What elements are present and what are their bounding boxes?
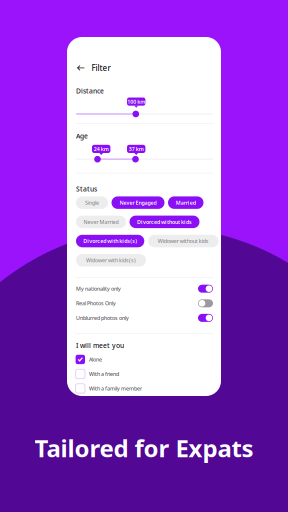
staticText: With a friend [89, 370, 119, 377]
staticText: Real Photos Only [76, 300, 116, 307]
button[interactable]: Real Photos Only [76, 296, 213, 311]
staticText: 24 km [94, 145, 109, 152]
staticText: Divorced without kids [137, 218, 192, 225]
staticText: My nationality only [76, 285, 121, 292]
staticText: Married [176, 199, 196, 206]
button[interactable]: Divorced with kids(s) [76, 235, 144, 247]
button[interactable]: Divorced without kids [129, 216, 199, 228]
button[interactable]: Filter [77, 63, 110, 72]
staticText: Filter [91, 63, 110, 73]
staticText: Distance [76, 86, 104, 95]
staticText: 100 km [127, 98, 145, 105]
staticText: Divorced with kids(s) [83, 237, 137, 245]
button[interactable]: Never Engaged [111, 196, 164, 209]
button[interactable]: My nationality only [76, 281, 213, 296]
staticText: I will meet you [76, 341, 124, 350]
staticText: With a family member [89, 385, 142, 392]
button[interactable]: Unblurred photos only [76, 311, 213, 325]
button[interactable]: Widower with kids(s) [76, 254, 146, 266]
staticText: Status [76, 184, 97, 193]
button[interactable]: With a family member [76, 381, 213, 396]
staticText: Tailored for Expats [34, 432, 253, 464]
staticText: Widower with kids(s) [86, 257, 136, 264]
button[interactable]: With a friend [76, 367, 213, 381]
button[interactable]: Never Married [76, 216, 126, 228]
button[interactable]: Widower without kids [148, 235, 218, 247]
button[interactable]: Married [168, 196, 203, 209]
button[interactable]: Alone [76, 352, 213, 367]
staticText: Age [76, 131, 88, 140]
staticText: Single [85, 199, 99, 206]
button[interactable]: Single [76, 196, 108, 209]
staticText: 37 km [129, 145, 144, 152]
staticText: Alone [89, 356, 102, 363]
staticText: Unblurred photos only [76, 314, 129, 321]
staticText: Never Married [83, 218, 118, 225]
staticText: Never Engaged [119, 199, 156, 206]
staticText: Widower without kids [158, 237, 209, 245]
